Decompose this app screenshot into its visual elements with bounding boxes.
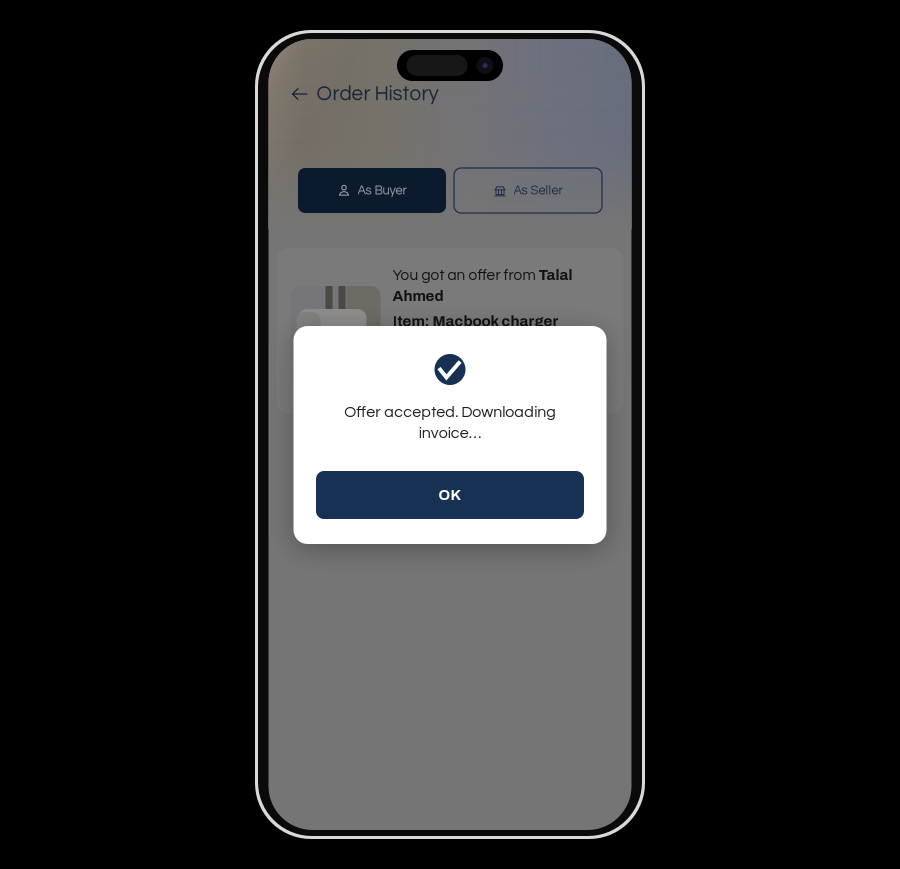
staticText: As Buyer [357,184,406,197]
staticText: Order History [316,83,438,105]
button[interactable]: OK [316,471,584,519]
staticText: You got an offer from Talal Ahmed [392,267,572,304]
staticText: Offer accepted. Downloading invoice… [344,404,556,441]
staticText: As Seller [513,184,562,197]
button[interactable]: As Seller [454,168,602,213]
staticText: OK [438,487,461,503]
staticText: Item: Macbook charger [392,313,558,329]
button[interactable]: As Buyer [298,168,446,213]
button[interactable]: Back [285,80,313,108]
staticText: Offer: $24 [392,338,462,355]
